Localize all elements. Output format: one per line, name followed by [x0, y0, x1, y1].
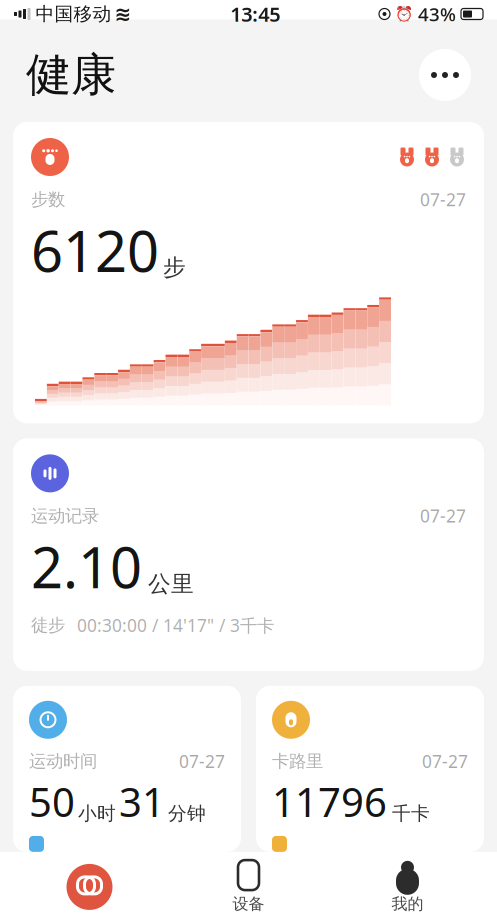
- staticText: 小时: [78, 802, 116, 825]
- staticText: 卡路里: [272, 751, 323, 772]
- staticText: 07-27: [179, 750, 225, 773]
- button[interactable]: 我的: [328, 856, 487, 918]
- staticText: 07-27: [420, 188, 466, 211]
- staticText: 健康: [26, 47, 116, 103]
- staticText: 分钟: [168, 802, 206, 825]
- staticText: 运动时间: [29, 751, 97, 772]
- button[interactable]: 健康: [10, 856, 169, 918]
- staticText: 步数: [31, 189, 65, 210]
- staticText: 中国移动: [35, 2, 111, 25]
- button[interactable]: 更多: [419, 49, 471, 101]
- staticText: 步: [163, 253, 186, 281]
- staticText: 50: [29, 775, 75, 828]
- staticText: 07-27: [420, 504, 466, 527]
- button[interactable]: 运动时间: [13, 686, 241, 852]
- staticText: 徒步: [31, 615, 65, 636]
- staticText: 千卡: [392, 802, 430, 825]
- button[interactable]: 设备: [169, 856, 328, 918]
- staticText: 13:45: [230, 1, 280, 27]
- staticText: 11796: [272, 775, 387, 828]
- staticText: 00:30:00 / 14'17" / 3千卡: [77, 614, 274, 637]
- staticText: 我的: [391, 894, 423, 914]
- staticText: 设备: [232, 894, 264, 914]
- staticText: 公里: [148, 570, 194, 598]
- button[interactable]: 运动记录: [13, 438, 484, 671]
- button[interactable]: 步数: [13, 122, 484, 423]
- staticText: ≋: [114, 3, 131, 25]
- staticText: 07-27: [422, 750, 468, 773]
- button[interactable]: 卡路里: [256, 686, 484, 852]
- staticText: 31: [119, 775, 165, 828]
- staticText: 43%: [418, 2, 456, 26]
- staticText: 运动记录: [31, 505, 99, 526]
- staticText: 6120: [31, 213, 159, 287]
- staticText: ⏰: [395, 6, 413, 22]
- staticText: 2.10: [31, 529, 142, 604]
